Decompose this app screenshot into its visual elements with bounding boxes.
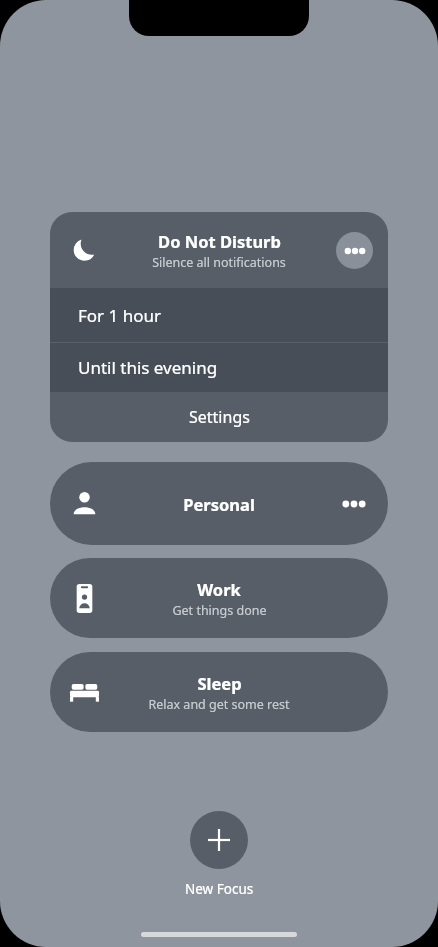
button[interactable]: More options xyxy=(336,232,373,269)
button[interactable]: Personal xyxy=(50,462,388,545)
staticText: New Focus xyxy=(185,880,254,898)
staticText: Settings xyxy=(189,406,250,428)
button[interactable]: Work xyxy=(50,558,388,638)
staticText: Sleep xyxy=(197,672,242,694)
button[interactable]: Sleep xyxy=(50,652,388,732)
staticText: Personal xyxy=(183,493,255,515)
staticText: Do Not Disturb xyxy=(158,230,281,252)
button[interactable]: More options xyxy=(334,484,374,524)
staticText: Relax and get some rest xyxy=(148,696,290,713)
button[interactable]: Settings xyxy=(50,392,388,442)
staticText: Work xyxy=(197,578,241,600)
staticText: For 1 hour xyxy=(78,304,162,327)
staticText: Silence all notifications xyxy=(152,254,286,271)
button[interactable]: Do Not Disturb xyxy=(50,212,388,288)
staticText: Get things done xyxy=(172,602,267,619)
button[interactable]: Until this evening xyxy=(50,343,388,392)
staticText: Until this evening xyxy=(78,356,218,379)
button[interactable]: For 1 hour xyxy=(50,288,388,342)
button[interactable]: New Focus xyxy=(190,811,248,869)
